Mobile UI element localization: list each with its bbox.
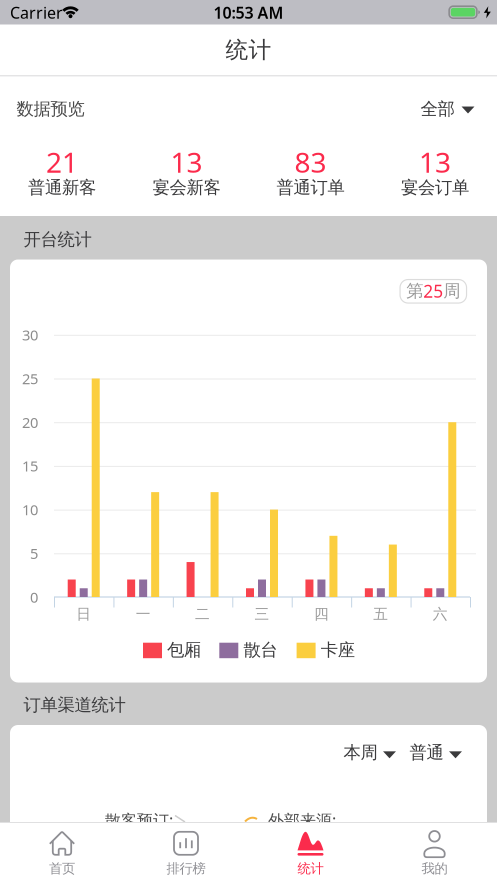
staticText: 二 [195, 605, 210, 623]
staticText: 0 [30, 587, 38, 607]
staticText: 宴会新客 [152, 177, 220, 198]
staticText: 21 [46, 143, 78, 181]
staticText: 10 [22, 500, 38, 519]
staticText: 普通订单 [277, 177, 345, 198]
staticText: 10:53 AM [213, 2, 283, 23]
staticText: 25 [22, 369, 38, 388]
staticText: 首页 [49, 860, 75, 877]
staticText: 30 [22, 325, 38, 345]
staticText: 我的 [421, 860, 447, 877]
staticText: 宴会订单 [401, 177, 469, 198]
staticText: 第 [406, 280, 423, 302]
staticText: Carrier [10, 2, 63, 23]
staticText: 25 [423, 279, 443, 302]
staticText: 13 [419, 143, 451, 181]
staticText: 15 [22, 456, 38, 476]
staticText: 日 [76, 605, 91, 623]
staticText: 四 [314, 605, 329, 623]
staticText: 本周 [343, 742, 377, 763]
staticText: 订单渠道统计 [23, 694, 125, 716]
staticText: 外部来源: [268, 809, 336, 831]
staticText: 散客预订: [105, 809, 173, 831]
staticText: 5 [30, 544, 38, 563]
staticText: 普通 [409, 742, 443, 763]
staticText: 普通新客 [28, 177, 96, 198]
staticText: 卡座 [321, 639, 355, 661]
staticText: 排行榜 [166, 860, 205, 877]
staticText: 散台 [243, 639, 277, 661]
staticText: 83 [295, 143, 327, 181]
staticText: 数据预览 [16, 98, 84, 120]
staticText: 包厢 [167, 639, 201, 661]
staticText: 五 [373, 605, 388, 623]
staticText: 统计 [225, 36, 271, 64]
staticText: 统计 [297, 860, 323, 877]
staticText: 20 [22, 412, 38, 432]
staticText: 全部 [420, 98, 454, 120]
staticText: 周 [443, 280, 460, 302]
staticText: 13 [170, 143, 202, 181]
staticText: 六 [433, 605, 448, 623]
staticText: 开台统计 [23, 229, 91, 250]
staticText: 一 [136, 605, 151, 623]
staticText: 三 [254, 605, 269, 623]
